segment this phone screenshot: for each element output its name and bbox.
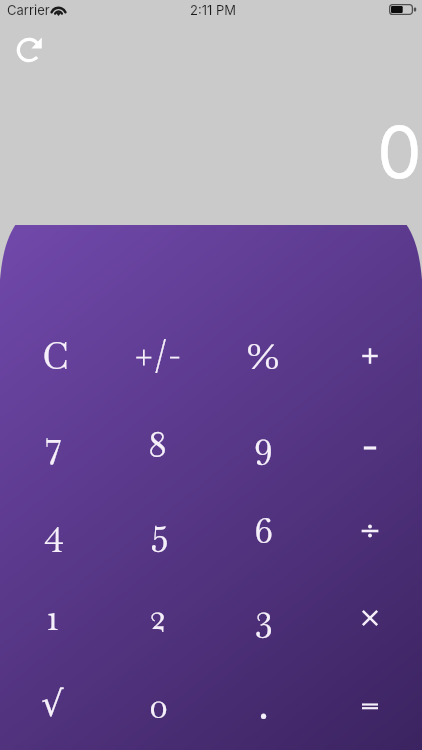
button[interactable]: 4 xyxy=(0,487,106,574)
staticText: 1 xyxy=(47,593,59,641)
button[interactable]: 9 xyxy=(211,400,317,487)
button[interactable]: C xyxy=(0,312,106,399)
staticText: 4 xyxy=(43,507,64,555)
staticText: % xyxy=(246,327,280,381)
staticText: C xyxy=(42,332,69,380)
staticText: √ xyxy=(41,684,64,725)
staticText: 2:11 PM xyxy=(190,2,236,18)
staticText: 0 xyxy=(149,681,168,729)
staticText: 2 xyxy=(150,592,166,640)
button[interactable]: 5 xyxy=(106,487,212,574)
button[interactable]: . xyxy=(211,662,317,749)
staticText: 8 xyxy=(148,420,167,468)
staticText: . xyxy=(258,678,269,731)
button[interactable]: 0 xyxy=(106,662,212,749)
staticText: +/- xyxy=(134,334,182,378)
button[interactable]: 1 xyxy=(0,574,106,661)
button[interactable]: Equals xyxy=(317,662,422,749)
staticText: 9 xyxy=(254,419,273,467)
button[interactable]: 2 xyxy=(106,574,212,661)
staticText: Carrier xyxy=(7,2,50,18)
button[interactable]: √ xyxy=(0,662,106,749)
button[interactable]: 6 xyxy=(211,487,317,574)
staticText: 5 xyxy=(151,506,169,554)
staticText: 0 xyxy=(377,109,422,195)
button[interactable]: Reset xyxy=(9,30,49,70)
staticText: 6 xyxy=(254,506,273,554)
staticText: 7 xyxy=(45,419,62,467)
button[interactable]: 7 xyxy=(0,400,106,487)
button[interactable]: Add xyxy=(317,312,422,399)
button[interactable]: +/- xyxy=(106,312,212,399)
button[interactable]: 3 xyxy=(211,574,317,661)
button[interactable]: Multiply xyxy=(317,574,422,661)
staticText: 3 xyxy=(256,592,273,640)
button[interactable]: Divide xyxy=(317,487,422,574)
button[interactable]: % xyxy=(211,312,317,399)
button[interactable]: 8 xyxy=(106,400,212,487)
button[interactable]: Subtract xyxy=(317,404,422,491)
